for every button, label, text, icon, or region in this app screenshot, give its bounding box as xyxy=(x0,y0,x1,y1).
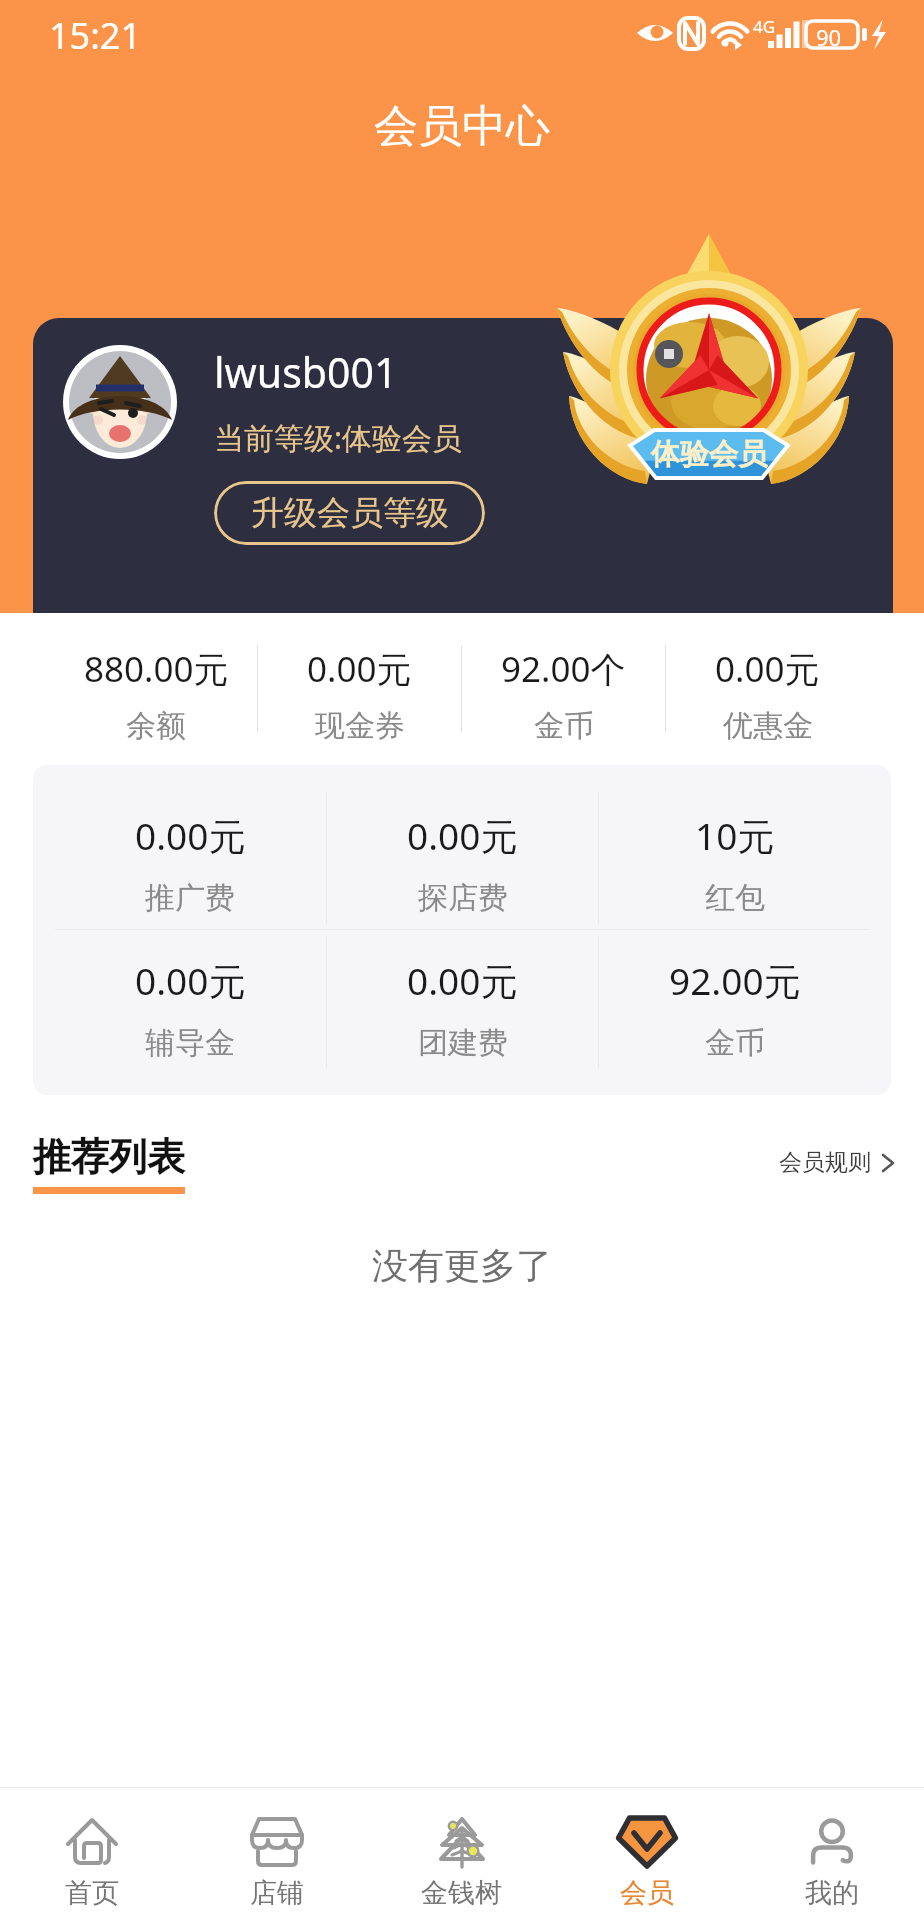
staticText: 92.00元 xyxy=(669,955,801,1006)
staticText: 当前等级:体验会员 xyxy=(214,417,463,458)
button[interactable]: 我的 xyxy=(739,1805,924,1920)
staticText: 0.00元 xyxy=(135,955,246,1006)
staticText: 体验会员 xyxy=(651,436,767,473)
button[interactable]: 0.00元 xyxy=(327,798,598,929)
staticText: 0.00元 xyxy=(407,955,518,1006)
button[interactable]: 升级会员等级 xyxy=(214,481,485,545)
staticText: 0.00元 xyxy=(407,810,518,861)
staticText: 红包 xyxy=(705,879,765,917)
staticText: 0.00元 xyxy=(715,645,820,693)
button[interactable]: 92.00个 xyxy=(462,624,665,765)
staticText: 会员 xyxy=(620,1876,674,1910)
staticText: 会员中心 xyxy=(374,99,550,154)
staticText: 升级会员等级 xyxy=(251,492,449,534)
button[interactable]: 92.00元 xyxy=(599,942,870,1074)
staticText: 会员规则 xyxy=(779,1148,871,1177)
staticText: 0.00元 xyxy=(135,810,246,861)
staticText: 现金券 xyxy=(315,707,405,745)
staticText: 团建费 xyxy=(418,1024,508,1062)
button[interactable]: 店铺 xyxy=(184,1805,369,1920)
staticText: 推荐列表 xyxy=(33,1133,185,1181)
button[interactable]: 0.00元 xyxy=(54,942,326,1074)
staticText: 92.00个 xyxy=(501,645,626,693)
button[interactable]: 会员规则 xyxy=(779,1148,899,1177)
staticText: 没有更多了 xyxy=(0,1243,924,1288)
staticText: 我的 xyxy=(805,1876,859,1910)
staticText: 10元 xyxy=(695,810,775,861)
button[interactable]: 会员 xyxy=(554,1805,739,1920)
staticText: 金钱树 xyxy=(421,1876,502,1910)
staticText: 880.00元 xyxy=(84,645,229,693)
button[interactable]: 880.00元 xyxy=(55,624,257,765)
staticText: 4G xyxy=(753,15,776,38)
button[interactable]: 0.00元 xyxy=(666,624,869,765)
staticText: 金币 xyxy=(534,707,594,745)
button[interactable]: 金钱树 xyxy=(369,1805,554,1920)
button[interactable]: 首页 xyxy=(0,1805,184,1920)
staticText: 辅导金 xyxy=(145,1024,235,1062)
staticText: 90 xyxy=(816,22,842,52)
button[interactable]: 10元 xyxy=(599,798,870,929)
button[interactable]: 0.00元 xyxy=(54,798,326,929)
staticText: lwusb001 xyxy=(214,344,398,400)
staticText: 0.00元 xyxy=(307,645,412,693)
staticText: 推广费 xyxy=(145,879,235,917)
staticText: 店铺 xyxy=(250,1876,304,1910)
staticText: 余额 xyxy=(126,707,186,745)
staticText: 探店费 xyxy=(418,879,508,917)
staticText: 金币 xyxy=(705,1024,765,1062)
staticText: 首页 xyxy=(65,1876,119,1910)
staticText: 15:21 xyxy=(49,11,142,60)
button[interactable]: 0.00元 xyxy=(258,624,461,765)
button[interactable]: 0.00元 xyxy=(327,942,598,1074)
staticText: 优惠金 xyxy=(723,707,813,745)
